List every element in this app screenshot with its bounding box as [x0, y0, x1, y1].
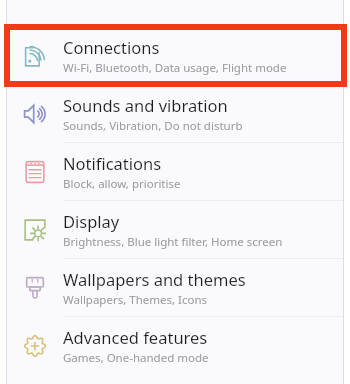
staticText: Display — [63, 210, 120, 232]
staticText: Wallpapers and themes — [63, 268, 246, 290]
staticText: Games, One-handed mode — [63, 350, 209, 366]
staticText: Block, allow, prioritise — [63, 176, 181, 192]
button[interactable]: Advanced features — [7, 317, 343, 374]
staticText: Sounds and vibration — [63, 94, 228, 116]
button[interactable]: Sounds and vibration — [7, 85, 343, 142]
staticText: Wi-Fi, Bluetooth, Data usage, Flight mod… — [63, 60, 287, 76]
staticText: Sounds, Vibration, Do not disturb — [63, 118, 243, 134]
button[interactable]: Wallpapers and themes — [7, 259, 343, 316]
staticText: Advanced features — [63, 326, 208, 348]
staticText: Notifications — [63, 152, 162, 174]
button[interactable]: Connections — [7, 27, 343, 84]
staticText: Brightness, Blue light filter, Home scre… — [63, 234, 283, 250]
staticText: Wallpapers, Themes, Icons — [63, 292, 208, 308]
button[interactable]: Display — [7, 201, 343, 258]
staticText: Connections — [63, 36, 160, 58]
button[interactable]: Notifications — [7, 143, 343, 200]
